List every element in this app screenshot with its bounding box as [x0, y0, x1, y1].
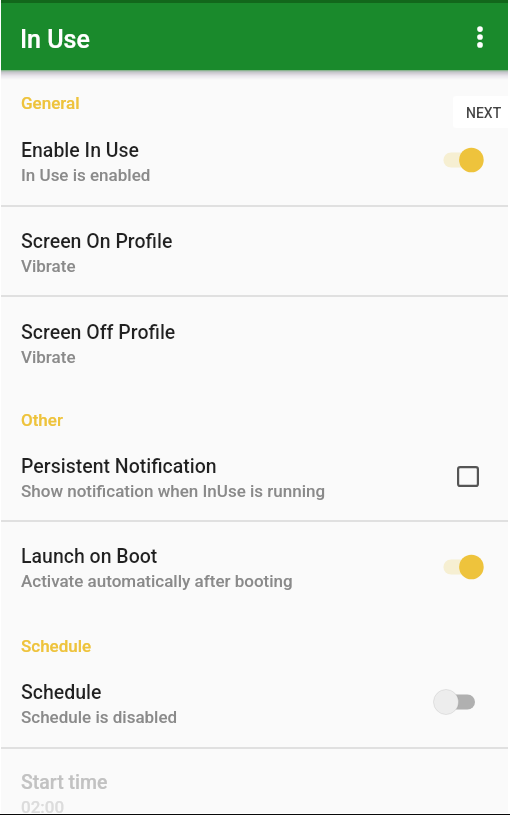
staticText: Schedule: [21, 681, 102, 704]
staticText: Schedule is disabled: [21, 707, 178, 727]
staticText: NEXT: [466, 105, 502, 121]
button[interactable]: Persistent Notification: [1, 455, 508, 501]
button[interactable]: Checkbox: [444, 452, 492, 500]
staticText: In Use: [20, 25, 90, 54]
staticText: Screen On Profile: [21, 230, 173, 253]
button[interactable]: Schedule: [1, 681, 508, 727]
staticText: Show notification when InUse is running: [21, 481, 326, 501]
staticText: Start time: [21, 771, 108, 794]
button[interactable]: Screen On Profile: [1, 230, 508, 276]
staticText: Persistent Notification: [21, 455, 217, 478]
staticText: Vibrate: [21, 256, 76, 276]
button[interactable]: Toggle: [431, 543, 485, 591]
button[interactable]: NEXT: [453, 96, 510, 128]
staticText: Other: [21, 410, 63, 430]
button[interactable]: Toggle: [431, 678, 485, 726]
staticText: General: [21, 93, 80, 113]
staticText: In Use is enabled: [21, 165, 151, 185]
staticText: Screen Off Profile: [21, 321, 176, 344]
staticText: Launch on Boot: [21, 545, 158, 568]
staticText: Vibrate: [21, 347, 76, 367]
staticText: Activate automatically after booting: [21, 571, 293, 591]
staticText: Enable In Use: [21, 139, 140, 162]
button[interactable]: More options: [456, 13, 504, 61]
staticText: Schedule: [21, 636, 92, 656]
button[interactable]: Enable In Use: [1, 139, 508, 185]
button[interactable]: Screen Off Profile: [1, 321, 508, 367]
button[interactable]: Toggle: [431, 136, 485, 184]
staticText: 02:00: [21, 797, 65, 815]
button[interactable]: Launch on Boot: [1, 545, 508, 591]
